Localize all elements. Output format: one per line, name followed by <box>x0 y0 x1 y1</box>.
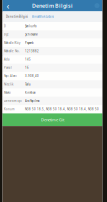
staticText: Mahalle/Köy <box>4 41 20 45</box>
staticText: Mahalle No. <box>4 49 20 53</box>
button[interactable]: Back <box>2 0 13 11</box>
button[interactable]: Account <box>91 0 102 11</box>
button[interactable]: Denetime Git <box>2 113 102 126</box>
staticText: N38 50 18.5, N38 50 18.4, N38 50 18.4, N… <box>25 107 99 111</box>
staticText: Mevkii <box>4 91 11 94</box>
staticText: Tarla <box>25 83 30 86</box>
staticText: Denetime Git <box>41 117 64 122</box>
staticText: Payamlı <box>25 41 34 45</box>
staticText: Kırıkhan <box>25 91 36 94</box>
staticText: İl <box>4 24 6 28</box>
staticText: 1213882 <box>25 49 39 53</box>
staticText: Denetim Tipi <box>4 99 22 103</box>
button[interactable]: Denetim Bilgisi <box>4 11 30 22</box>
staticText: Yapı Alanı <box>4 74 17 78</box>
staticText: Parsel <box>4 66 12 69</box>
staticText: ‹ <box>6 0 9 12</box>
staticText: Denetim Bilgisi <box>32 2 73 9</box>
staticText: 3.908,40 <box>25 74 39 78</box>
staticText: Ada <box>4 58 9 61</box>
staticText: Konum <box>4 107 14 111</box>
staticText: Ara Yapılma <box>25 99 39 103</box>
staticText: Denetim Bilgisi <box>6 15 28 18</box>
staticText: 16 <box>25 66 29 69</box>
staticText: Nitelik <box>4 83 13 86</box>
staticText: Şehitkamil <box>25 33 38 36</box>
staticText: Şanlıurfa <box>25 24 36 28</box>
staticText: İlçe <box>4 33 9 36</box>
staticText: Bina/Blok Listesi <box>32 15 54 18</box>
button[interactable]: Bina/Blok Listesi <box>30 11 56 22</box>
staticText: 145 <box>25 58 31 61</box>
